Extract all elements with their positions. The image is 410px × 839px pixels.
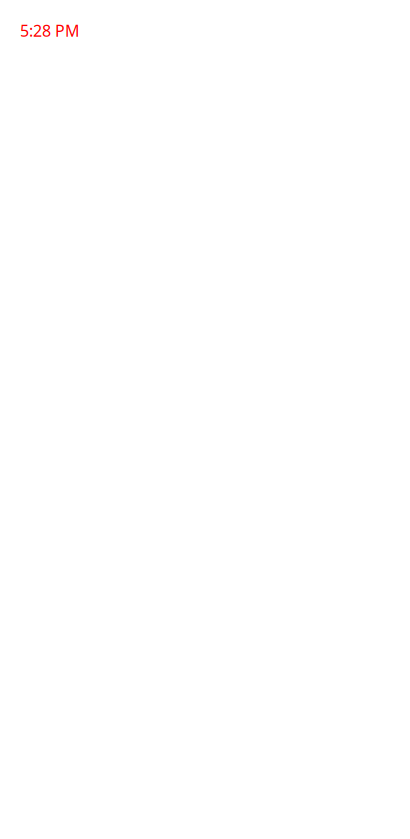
staticText: 5:28 PM — [20, 20, 80, 41]
